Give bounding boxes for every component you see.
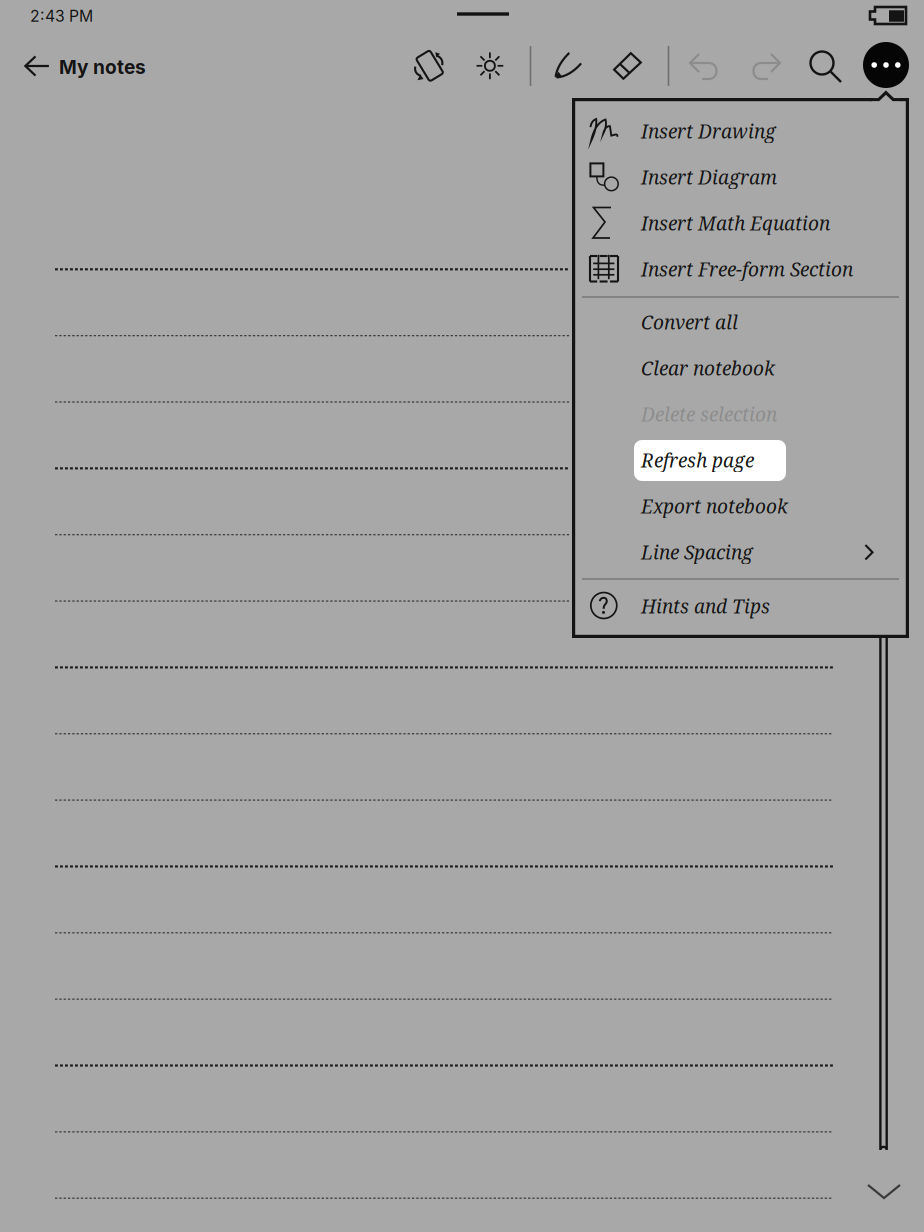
button[interactable]: Insert Diagram bbox=[0, 0, 924, 1232]
staticText: My notes bbox=[59, 55, 146, 79]
button[interactable]: Line Spacing bbox=[0, 0, 924, 1232]
button[interactable]: Scroll down bbox=[862, 1178, 906, 1204]
button[interactable]: Hints and Tips bbox=[0, 0, 924, 1232]
button[interactable]: Brightness bbox=[468, 42, 512, 90]
staticText: Clear notebook bbox=[641, 355, 775, 381]
button[interactable]: Convert all bbox=[0, 0, 924, 1232]
button[interactable]: Eraser bbox=[606, 42, 650, 90]
staticText: Convert all bbox=[641, 309, 738, 335]
button[interactable]: Insert Math Equation bbox=[0, 0, 924, 1232]
button[interactable]: Rotate screen bbox=[408, 42, 452, 90]
button[interactable]: Search bbox=[803, 42, 847, 90]
button[interactable]: Back bbox=[20, 50, 54, 82]
button[interactable]: Redo bbox=[743, 42, 787, 90]
button[interactable]: Clear notebook bbox=[0, 0, 924, 1232]
button[interactable]: Pen bbox=[546, 42, 590, 90]
staticText: Line Spacing bbox=[641, 539, 753, 565]
button[interactable]: Delete selection bbox=[0, 0, 924, 1232]
staticText: Insert Math Equation bbox=[641, 210, 830, 236]
button[interactable]: Refresh page bbox=[0, 0, 924, 1232]
staticText: Insert Diagram bbox=[641, 164, 777, 190]
staticText: Insert Drawing bbox=[641, 118, 776, 144]
staticText: Refresh page bbox=[641, 447, 754, 473]
staticText: Export notebook bbox=[641, 493, 788, 519]
staticText: Delete selection bbox=[641, 401, 777, 427]
staticText: Insert Free-form Section bbox=[641, 256, 853, 282]
button[interactable]: Undo bbox=[683, 42, 727, 90]
button[interactable]: Insert Drawing bbox=[0, 0, 924, 1232]
button[interactable]: More options bbox=[863, 42, 909, 88]
button[interactable]: Export notebook bbox=[0, 0, 924, 1232]
staticText: Hints and Tips bbox=[641, 593, 770, 619]
button[interactable]: Insert Free-form Section bbox=[0, 0, 924, 1232]
staticText: 2:43 PM bbox=[30, 6, 93, 25]
